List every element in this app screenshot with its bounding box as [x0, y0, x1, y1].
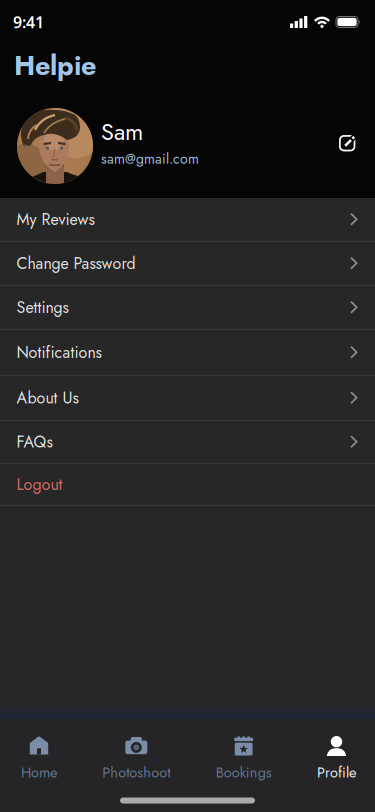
- button[interactable]: Edit profile: [339, 134, 375, 158]
- button[interactable]: Bookings: [216, 736, 272, 783]
- button[interactable]: Logout: [0, 464, 375, 506]
- button[interactable]: Settings: [0, 286, 375, 330]
- staticText: Bookings: [216, 762, 272, 783]
- button[interactable]: Photoshoot: [102, 736, 170, 783]
- staticText: FAQs: [16, 430, 52, 453]
- staticText: My Reviews: [16, 208, 94, 231]
- staticText: 9:41: [13, 11, 44, 33]
- button[interactable]: About Us: [0, 376, 375, 421]
- staticText: Change Password: [16, 252, 135, 275]
- staticText: Sam: [101, 115, 143, 149]
- staticText: Photoshoot: [102, 762, 170, 783]
- button[interactable]: FAQs: [0, 421, 375, 464]
- staticText: Helpie: [14, 46, 96, 85]
- button[interactable]: Home: [21, 736, 57, 783]
- staticText: Profile: [317, 762, 356, 783]
- button[interactable]: Profile: [317, 736, 356, 783]
- staticText: sam@gmail.com: [101, 149, 199, 169]
- button[interactable]: Notifications: [0, 330, 375, 376]
- staticText: Notifications: [16, 341, 101, 364]
- staticText: About Us: [16, 386, 78, 409]
- staticText: Logout: [16, 473, 62, 496]
- staticText: Home: [21, 762, 57, 783]
- button[interactable]: Change Password: [0, 242, 375, 286]
- button[interactable]: My Reviews: [0, 198, 375, 242]
- staticText: Settings: [16, 296, 68, 319]
